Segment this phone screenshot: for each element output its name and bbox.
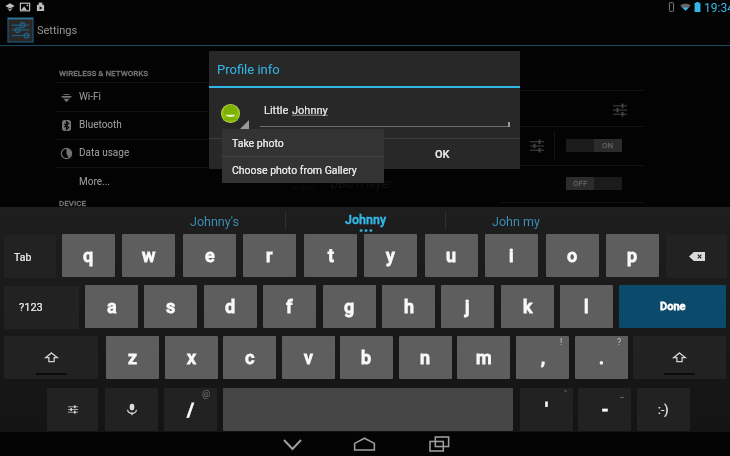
button[interactable]: Johnny [286,208,445,234]
button[interactable]: Shift [4,336,98,379]
staticText: ? [617,337,622,348]
button[interactable]: g [323,285,376,328]
button[interactable]: c [223,336,276,379]
button[interactable]: / [164,388,217,431]
staticText: o [567,245,578,266]
staticText: ! [560,337,563,348]
staticText: y [386,245,395,266]
staticText: m [476,347,492,368]
staticText: Bluetooth [79,119,122,131]
staticText: Choose photo from Gallery [232,164,357,176]
staticText: DEVICE [59,199,86,208]
button[interactable]: Voice input [105,388,158,431]
staticText: k [523,296,533,317]
button[interactable]: x [165,336,218,379]
button[interactable]: n [399,336,452,379]
button[interactable]: Back [272,432,312,456]
staticText: :-) [658,403,669,417]
button[interactable]: i [485,234,538,277]
staticText: g [344,296,355,317]
staticText: , [541,347,545,368]
staticText: s [166,296,176,317]
staticText: @ [202,389,211,400]
staticText: j [465,296,470,317]
button[interactable]: Johnny's [134,208,294,234]
staticText: More... [79,176,110,188]
staticText: Profile info [217,62,280,77]
button[interactable]: Wi-Fi [55,83,500,111]
button[interactable]: Profile photo [221,104,240,123]
staticText: OFF [573,179,588,188]
button[interactable]: John my [446,208,586,234]
staticText: ?123 [19,301,43,314]
staticText: Johnny [292,104,328,117]
button[interactable]: l [560,285,613,328]
button[interactable]: ' [520,388,573,431]
button[interactable]: :-) [637,388,690,431]
button[interactable]: a [85,285,138,328]
button[interactable]: b [340,336,393,379]
staticText: Little [264,104,292,117]
button[interactable]: , [516,336,569,379]
staticText: u [446,245,457,266]
staticText: z [128,347,138,368]
staticText: p [627,245,638,266]
staticText: f [286,296,293,317]
button[interactable]: Backspace [666,235,727,278]
button[interactable]: z [106,336,159,379]
button[interactable]: j [441,285,494,328]
staticText: Wi-Fi [79,91,102,103]
button[interactable]: Home [344,432,384,456]
staticText: Tab [14,251,32,263]
button[interactable]: Data usage [55,139,500,167]
button[interactable]: f [263,285,316,328]
button[interactable]: Shift [633,336,726,379]
button[interactable]: r [243,234,296,277]
button[interactable]: OK [364,139,520,169]
staticText: . [599,347,605,368]
button[interactable]: v [282,336,335,379]
button[interactable]: Done [619,285,726,328]
staticText: WIRELESS & NETWORKS [59,69,149,78]
staticText: _ [620,389,625,400]
button[interactable]: ?123 [4,286,79,329]
staticText: 19:34 [704,1,730,15]
staticText: d [225,296,236,317]
button[interactable]: h [382,285,435,328]
staticText: a [107,296,117,317]
button[interactable]: u [425,234,478,277]
button[interactable]: o [546,234,599,277]
button[interactable]: w [122,234,175,277]
button[interactable]: q [62,234,115,277]
button[interactable]: d [204,285,257,328]
staticText: b [361,347,372,368]
staticText: OK [435,148,450,161]
button[interactable]: y [364,234,417,277]
button[interactable]: p [606,234,659,277]
button[interactable]: m [457,336,510,379]
staticText: Data usage [79,147,130,159]
button[interactable]: k [501,285,554,328]
staticText: q [83,245,94,266]
button[interactable]: e [183,234,236,277]
button[interactable]: Keyboard settings [47,388,98,431]
button[interactable]: s [144,285,197,328]
staticText: - [602,399,608,420]
staticText: n [420,347,431,368]
staticText: Johnny's [190,214,239,229]
button[interactable]: Choose photo from Gallery [222,157,384,183]
button[interactable]: Recents [419,432,459,456]
staticText: h [404,296,414,317]
button[interactable]: Settings [8,18,33,42]
button[interactable]: More... [55,167,500,195]
button[interactable]: - [578,388,631,431]
button[interactable]: Take photo [222,129,384,156]
button[interactable]: Tab [4,235,56,278]
button[interactable]: . [575,336,628,379]
button[interactable]: Bluetooth [55,111,500,139]
staticText: John my [492,214,540,229]
button[interactable]: t [304,234,357,277]
staticText: x [187,347,197,368]
